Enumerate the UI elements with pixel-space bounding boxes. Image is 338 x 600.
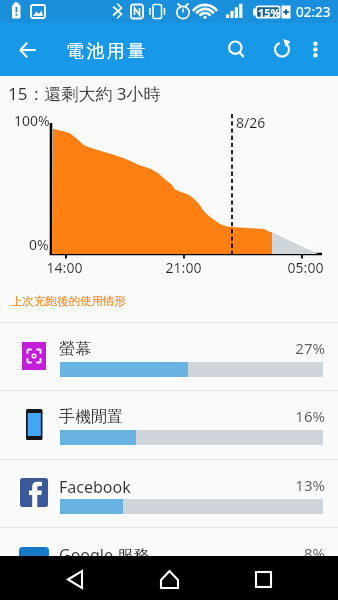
button[interactable]: More options (300, 23, 330, 76)
staticText: 05:00 (285, 258, 326, 277)
staticText: 0% (29, 235, 49, 254)
staticText: 手機閒置 (59, 407, 123, 427)
staticText: Google 服務 (59, 544, 150, 566)
button[interactable]: Refresh (259, 23, 305, 76)
staticText: 螢幕 (59, 339, 91, 359)
button[interactable]: 手機閒置 (0, 390, 338, 458)
staticText: 8% (285, 543, 325, 563)
button[interactable]: 螢幕 (0, 322, 338, 390)
staticText: 21:00 (163, 258, 204, 277)
button[interactable]: Search (212, 23, 258, 76)
staticText: Facebook (59, 476, 131, 498)
staticText: 14:00 (44, 258, 85, 277)
staticText: 100% (14, 111, 50, 130)
staticText: 電池用量 (66, 40, 148, 63)
staticText: 02:23 (296, 3, 331, 21)
staticText: 27% (285, 338, 325, 358)
staticText: 13% (285, 475, 325, 495)
staticText: 15：還剩大約 3小時 (8, 82, 161, 105)
button[interactable]: Back (4, 26, 52, 74)
button[interactable]: Facebook (0, 459, 338, 527)
staticText: 8/26 (236, 113, 266, 132)
staticText: 15% (258, 5, 281, 20)
staticText: 16% (285, 406, 325, 426)
staticText: 上次充飽後的使用情形 (11, 294, 126, 308)
button[interactable]: Google 服務 (0, 527, 338, 595)
